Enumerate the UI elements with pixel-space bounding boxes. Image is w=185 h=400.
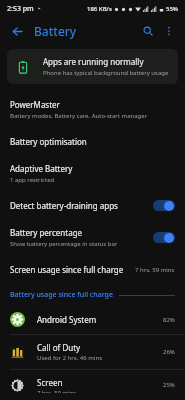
staticText: 55% xyxy=(166,5,178,13)
staticText: Phone has typical background battery usa… xyxy=(43,69,169,77)
staticText: Battery xyxy=(34,23,77,39)
staticText: Battery percentage xyxy=(10,227,83,238)
button[interactable]: Adaptive Battery xyxy=(0,155,185,192)
button[interactable]: Detect battery-draining apps xyxy=(0,192,185,219)
staticText: Show battery percentage in status bar xyxy=(10,240,118,248)
staticText: 26% xyxy=(163,348,175,356)
staticText: Battery optimisation xyxy=(10,136,87,147)
staticText: 1 app restricted xyxy=(10,176,55,184)
staticText: Battery modes, Battery care, Auto-start … xyxy=(10,112,148,120)
staticText: Apps are running normally xyxy=(43,56,144,67)
staticText: 186 KB/s xyxy=(87,5,112,13)
button[interactable]: Screen usage since full charge xyxy=(0,256,185,283)
button[interactable]: Android System xyxy=(0,305,185,334)
staticText: 25% xyxy=(163,381,175,389)
button[interactable]: More options xyxy=(159,21,179,41)
button[interactable]: Back xyxy=(6,20,28,42)
button[interactable]: PowerMaster xyxy=(0,91,185,128)
button[interactable]: Battery percentage xyxy=(0,219,185,256)
staticText: Screen xyxy=(37,377,63,388)
button[interactable]: Call of Duty xyxy=(0,335,185,369)
staticText: 7 hrs, 59 mins xyxy=(37,389,77,393)
staticText: Battery usage since full charge xyxy=(10,290,113,300)
staticText: 7 hrs, 59 mins xyxy=(135,266,175,274)
button[interactable]: Search xyxy=(137,20,159,42)
staticText: Used for 2 hrs, 46 mins xyxy=(37,354,103,362)
staticText: 2:53 pm xyxy=(7,4,34,14)
staticText: Detect battery-draining apps xyxy=(10,200,118,211)
staticText: Adaptive Battery xyxy=(10,163,73,174)
staticText: Android System xyxy=(37,314,97,325)
staticText: PowerMaster xyxy=(10,99,60,110)
staticText: Call of Duty xyxy=(37,342,81,353)
button[interactable]: Screen xyxy=(0,370,185,400)
button[interactable]: Apps are running normally xyxy=(7,49,178,84)
staticText: 82% xyxy=(163,316,175,324)
staticText: Screen usage since full charge xyxy=(10,264,135,275)
button[interactable]: Battery optimisation xyxy=(0,128,185,155)
